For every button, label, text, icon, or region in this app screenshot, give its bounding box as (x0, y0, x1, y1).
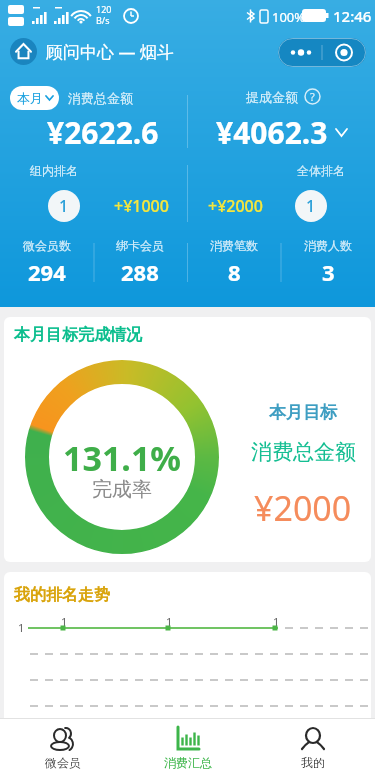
staticText: +¥1000 (114, 195, 169, 217)
staticText: 288 (121, 257, 159, 287)
button[interactable]: 微会员 (0, 719, 125, 778)
staticText: 消费总金额 (251, 439, 356, 465)
staticText: B/s (96, 14, 110, 26)
staticText: 1 (59, 195, 69, 217)
staticText: 1 (273, 614, 280, 629)
staticText: +¥2000 (208, 195, 263, 217)
staticText: 消费笔数 (210, 238, 258, 253)
button[interactable]: 本月 (10, 86, 59, 110)
staticText: 131.1% (63, 435, 182, 481)
staticText: 消费人数 (304, 238, 352, 253)
staticText: 本月 (17, 90, 43, 106)
staticText: 我的排名走势 (14, 585, 110, 605)
staticText: 消费总金额 (68, 90, 133, 106)
staticText: 294 (28, 257, 66, 287)
staticText: 组内排名 (30, 163, 78, 178)
button[interactable] (10, 38, 37, 65)
button[interactable] (278, 38, 366, 67)
staticText: 消费汇总 (164, 755, 212, 770)
staticText: 绑卡会员 (116, 238, 164, 253)
staticText: 8 (228, 257, 241, 287)
staticText: 1 (306, 195, 316, 217)
staticText: 微会员数 (23, 238, 71, 253)
staticText: 全体排名 (297, 163, 345, 178)
staticText: 微会员 (45, 755, 81, 770)
staticText: ? (310, 89, 315, 104)
staticText: 12:46 (333, 6, 372, 26)
staticText: ¥2622.6 (47, 112, 159, 153)
staticText: 本月目标完成情况 (14, 325, 142, 345)
button[interactable]: 消费汇总 (125, 719, 250, 778)
button[interactable]: 我的 (250, 719, 375, 778)
staticText: 完成率 (92, 477, 152, 502)
staticText: ¥4062.3 (216, 112, 328, 153)
staticText: 1 (166, 614, 173, 629)
staticText: 我的 (301, 755, 325, 770)
staticText: 提成金额 (246, 89, 298, 105)
staticText: 顾问中心 — 烟斗 (46, 40, 174, 63)
staticText: 100% (272, 8, 306, 26)
staticText: 3 (322, 257, 335, 287)
staticText: ¥2000 (254, 485, 352, 531)
staticText: 本月目标 (269, 402, 337, 423)
staticText: 1 (61, 614, 68, 629)
staticText: 120 (96, 3, 112, 15)
staticText: 1 (18, 620, 25, 635)
